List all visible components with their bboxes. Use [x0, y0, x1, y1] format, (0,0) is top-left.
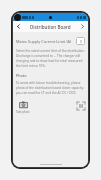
staticText: Mains Supply Current Limit (A)	[16, 39, 74, 44]
staticText: Photo	[16, 73, 27, 78]
staticText: charging rate to draw load for total mea…	[16, 59, 85, 63]
staticText: Select the rated current limit of the di…	[16, 49, 85, 53]
button[interactable]: Scan code	[77, 102, 85, 110]
button[interactable]: Take photo	[16, 100, 30, 114]
staticText: Take photo	[16, 110, 30, 114]
button[interactable]: 0	[76, 37, 85, 45]
button[interactable]: Navigate up	[13, 21, 24, 32]
staticText: Discharge is converted to ... The charge…	[16, 54, 85, 58]
staticText: Distribution Board	[30, 24, 71, 30]
button[interactable]: Next	[77, 21, 88, 32]
staticText: you can read the CT and the AC DC / DDC.	[16, 91, 77, 95]
staticText: the limit minus 10%.	[16, 64, 46, 68]
staticText: 0	[80, 39, 82, 44]
staticText: To assist with future troubleshooting, p…	[16, 81, 85, 85]
staticText: photo of the distribution board closer c…	[16, 86, 85, 90]
